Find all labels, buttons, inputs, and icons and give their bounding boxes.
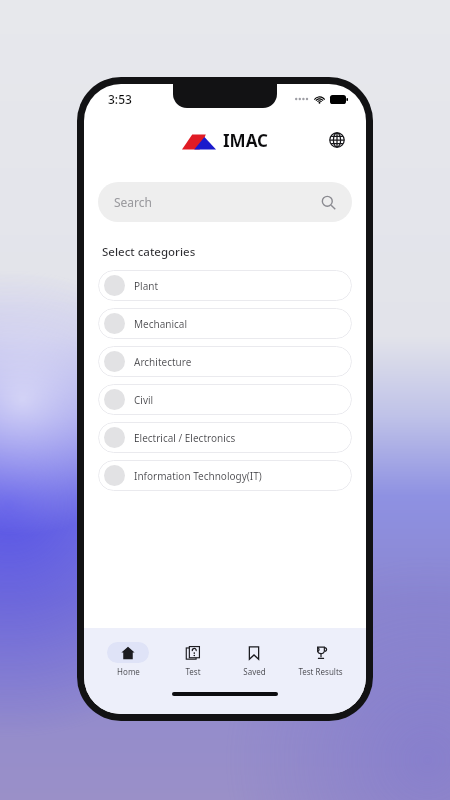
staticText: IMAC <box>223 129 268 152</box>
staticText: Saved <box>243 666 266 677</box>
staticText: Test Results <box>298 666 343 677</box>
staticText: Home <box>117 666 140 677</box>
button[interactable]: Saved <box>233 640 275 679</box>
button[interactable]: Language <box>322 125 352 155</box>
button[interactable]: Search <box>98 182 352 222</box>
staticText: 3:53 <box>108 91 132 107</box>
button[interactable]: Mechanical <box>98 308 352 339</box>
staticText: Electrical / Electronics <box>134 431 236 445</box>
staticText: Test <box>185 666 201 677</box>
button[interactable]: Architecture <box>98 346 352 377</box>
button[interactable]: Civil <box>98 384 352 415</box>
staticText: Information Technology(IT) <box>134 469 262 483</box>
button[interactable]: Test <box>172 640 214 679</box>
staticText: Select categories <box>102 244 196 260</box>
button[interactable]: Home <box>103 640 153 679</box>
button[interactable]: Test Results <box>294 640 347 679</box>
staticText: Architecture <box>134 355 192 369</box>
button[interactable]: Information Technology(IT) <box>98 460 352 491</box>
staticText: Civil <box>134 393 154 407</box>
button[interactable]: Electrical / Electronics <box>98 422 352 453</box>
staticText: Plant <box>134 279 159 293</box>
button[interactable]: Plant <box>98 270 352 301</box>
staticText: Search <box>114 194 321 210</box>
staticText: Mechanical <box>134 317 188 331</box>
